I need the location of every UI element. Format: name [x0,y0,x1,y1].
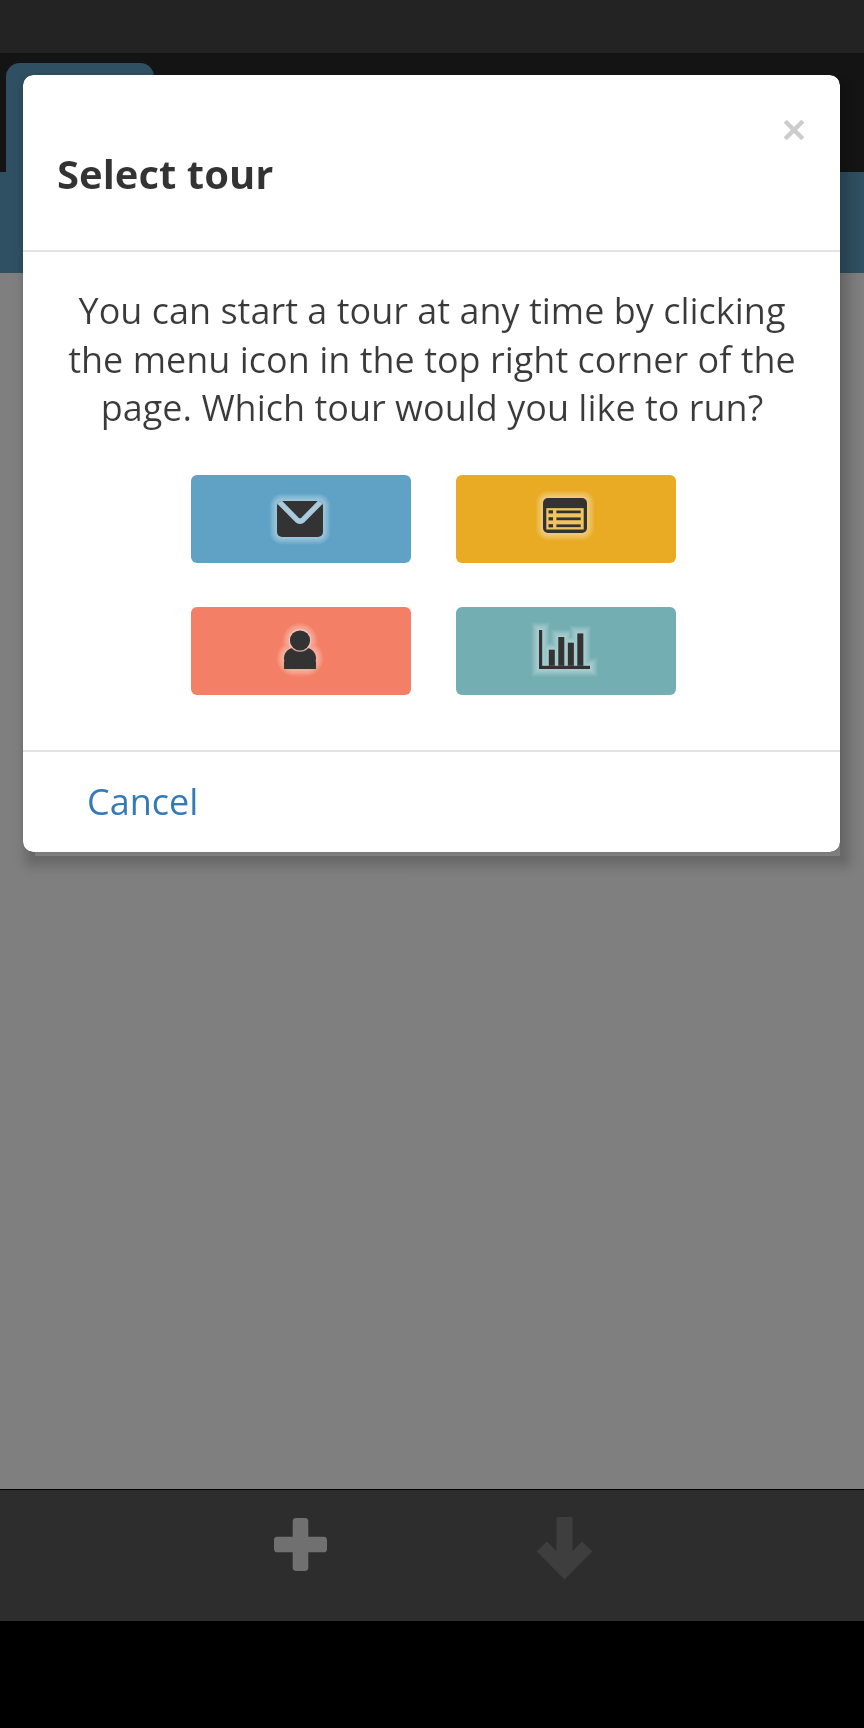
staticText: Select tour [57,146,274,200]
button[interactable] [456,475,676,563]
button[interactable] [191,607,411,695]
button[interactable]: Add [236,1490,365,1621]
button[interactable]: Close [770,106,818,154]
button[interactable] [191,475,411,563]
staticText: Cancel [87,777,199,826]
button[interactable]: Cancel [87,777,199,826]
button[interactable] [456,607,676,695]
button[interactable]: Download [500,1490,629,1621]
staticText: You can start a tour at any time by clic… [62,286,802,431]
